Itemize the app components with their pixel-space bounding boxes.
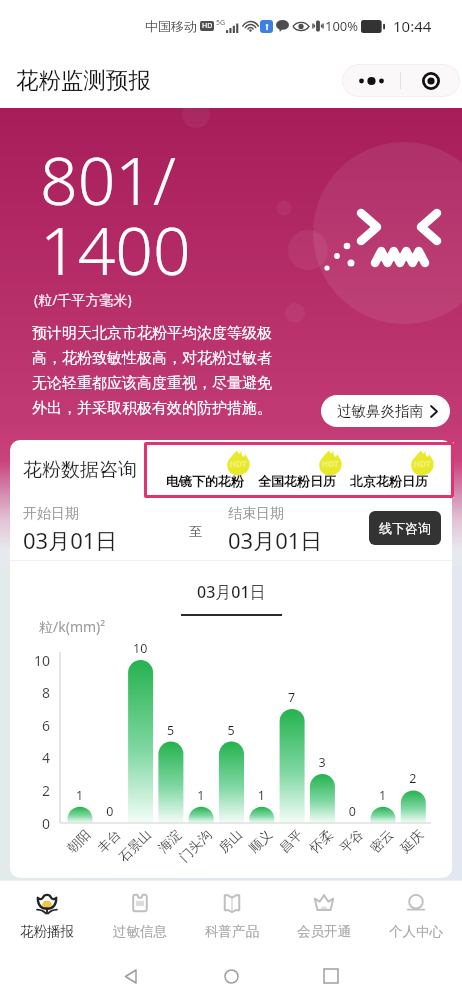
staticText: 花粉播报 [20, 923, 74, 940]
staticText: 100% [325, 17, 359, 35]
button[interactable]: More options [342, 64, 400, 97]
staticText: 03月01日 [23, 525, 118, 551]
staticText: 电镜下的花粉 [166, 473, 244, 489]
button[interactable]: 花粉播报 [0, 880, 93, 952]
staticText: 会员开通 [297, 923, 351, 940]
button[interactable]: 过敏鼻炎指南 [321, 395, 450, 427]
staticText: 过敏信息 [113, 923, 167, 940]
button[interactable]: Close mini program [401, 64, 460, 97]
button[interactable]: Recent apps [281, 952, 381, 1000]
staticText: 10:44 [393, 16, 432, 36]
staticText: 过敏鼻炎指南 [337, 402, 424, 420]
button[interactable]: Home [181, 952, 281, 1000]
button[interactable]: 过敏信息 [93, 880, 186, 952]
staticText: 5G [216, 18, 226, 28]
staticText: 花粉监测预报 [16, 66, 151, 94]
staticText: (粒/千平方毫米) [34, 290, 132, 309]
staticText: 开始日期 [23, 505, 79, 523]
staticText: 北京花粉日历 [350, 473, 428, 489]
button[interactable]: 电镜下的花粉 [166, 442, 258, 498]
button[interactable]: 北京花粉日历 [350, 442, 442, 498]
button[interactable]: 线下咨询 [369, 511, 441, 545]
button[interactable]: 全国花粉日历 [258, 442, 350, 498]
staticText: HD [202, 21, 213, 31]
staticText: 03月01日 [228, 525, 323, 551]
staticText: 中国移动 [145, 18, 197, 34]
staticText: 结束日期 [228, 505, 284, 523]
staticText: 801/ 1400 [40, 134, 191, 294]
button[interactable]: Back [81, 952, 181, 1000]
staticText: 预计明天北京市花粉平均浓度等级极 高，花粉致敏性极高，对花粉过敏者 无论轻重都应… [32, 324, 272, 418]
button[interactable]: 开始日期 [23, 505, 118, 551]
button[interactable]: 科普产品 [186, 880, 278, 952]
button[interactable]: 个人中心 [370, 880, 462, 952]
staticText: 个人中心 [389, 923, 443, 940]
staticText: 03月01日 [197, 581, 266, 603]
staticText: 至 [189, 523, 202, 539]
staticText: 科普产品 [205, 923, 259, 940]
staticText: 粒/k(mm)² [39, 617, 106, 636]
button[interactable]: 会员开通 [278, 880, 370, 952]
staticText: 花粉数据咨询 [23, 458, 137, 482]
staticText: 线下咨询 [379, 520, 431, 536]
button[interactable]: 结束日期 [228, 505, 323, 551]
staticText: 全国花粉日历 [258, 473, 336, 489]
